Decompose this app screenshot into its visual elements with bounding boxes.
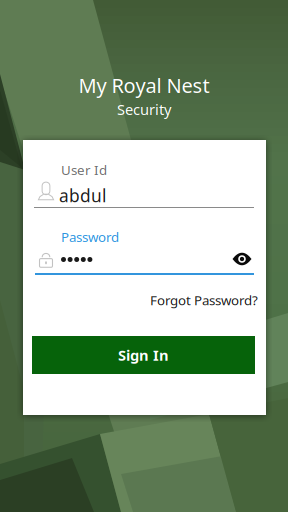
staticText: My Royal Nest (78, 72, 209, 99)
staticText: User Id (61, 161, 107, 179)
button[interactable]: Forgot Password? (140, 292, 258, 308)
staticText: Forgot Password? (150, 291, 258, 309)
staticText: Security (117, 100, 171, 119)
staticText: Sign In (118, 345, 169, 365)
staticText: Password (61, 228, 119, 246)
button[interactable]: Show password (229, 248, 255, 270)
button[interactable]: Sign In (32, 336, 255, 374)
staticText: abdul (59, 184, 106, 207)
